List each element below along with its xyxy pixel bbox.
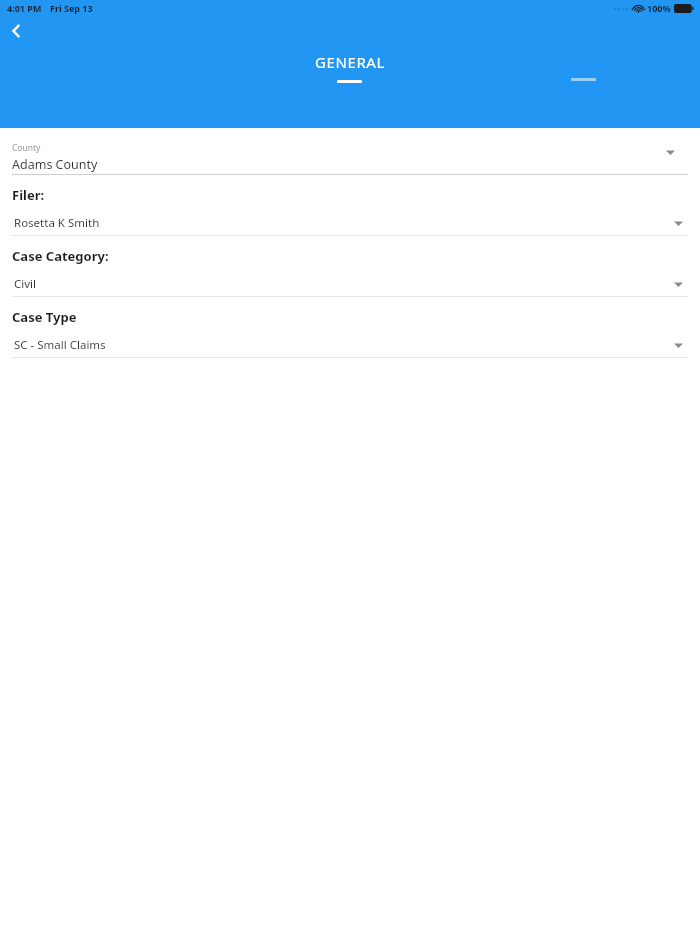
button[interactable]: SC - Small Claims	[0, 333, 700, 357]
staticText: County	[12, 142, 41, 154]
staticText: Civil	[14, 276, 37, 292]
staticText: Case Category:	[12, 247, 109, 265]
staticText: 100%	[647, 2, 671, 14]
button[interactable]: Rosetta K Smith	[0, 211, 700, 235]
button[interactable]	[467, 52, 700, 81]
button[interactable]: GENERAL	[232, 52, 467, 83]
staticText: Filer:	[12, 186, 45, 204]
staticText: SC - Small Claims	[14, 337, 106, 353]
staticText: GENERAL	[315, 52, 385, 72]
staticText: 4:01 PM	[7, 2, 42, 14]
staticText: Case Type	[12, 308, 77, 326]
staticText: Rosetta K Smith	[14, 215, 100, 231]
staticText: Fri Sep 13	[50, 2, 93, 14]
staticText: Adams County	[12, 156, 98, 173]
button[interactable]: Civil	[0, 272, 700, 296]
button[interactable]: Back	[2, 16, 32, 46]
button[interactable]: County	[0, 128, 700, 174]
